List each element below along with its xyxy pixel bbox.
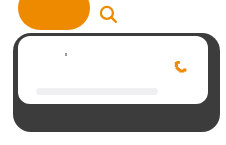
button[interactable]: Primary action <box>18 0 90 30</box>
button[interactable]: Search <box>93 0 123 29</box>
button[interactable]: Call <box>18 36 208 104</box>
button[interactable]: Call <box>171 58 189 76</box>
